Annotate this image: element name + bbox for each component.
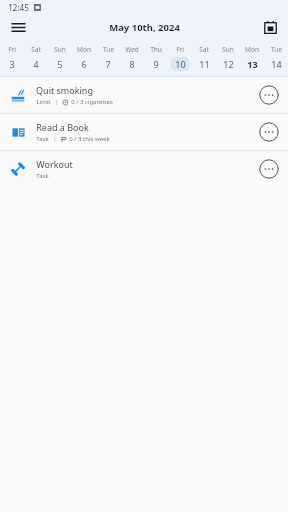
staticText: 4 [33, 58, 39, 70]
staticText: 10 [175, 58, 186, 70]
staticText: May 10th, 2024 [109, 21, 180, 34]
staticText: Sun [54, 45, 66, 54]
staticText: Tue [271, 45, 282, 54]
button[interactable]: Mon [240, 45, 264, 71]
staticText: Mon [245, 45, 259, 54]
staticText: Thu [150, 45, 162, 54]
staticText: 6 [81, 58, 87, 70]
staticText: 7 [105, 58, 111, 70]
staticText: 8 [129, 58, 135, 70]
button[interactable]: More options [258, 158, 280, 180]
button[interactable]: Mon [72, 45, 96, 71]
staticText: 9 [153, 58, 159, 70]
staticText: Workout [36, 158, 73, 170]
button[interactable]: Sun [48, 45, 72, 71]
button[interactable]: Workout [0, 151, 288, 187]
staticText: Task [36, 172, 49, 180]
button[interactable]: Sat [192, 45, 216, 71]
staticText: Quit smoking [36, 84, 93, 96]
button[interactable]: Read a Book [0, 114, 288, 150]
button[interactable]: Menu [6, 15, 30, 39]
button[interactable]: Thu [144, 45, 168, 71]
staticText: Sat [31, 45, 41, 54]
button[interactable]: Wed [120, 45, 144, 71]
staticText: 0 / 3 this week [69, 135, 110, 143]
staticText: 0 / 3 cigarettes [71, 98, 113, 106]
staticText: Read a Book [36, 121, 89, 133]
staticText: Task [36, 135, 49, 143]
button[interactable]: Fri [0, 45, 24, 71]
button[interactable]: More options [258, 84, 280, 106]
staticText: Mon [77, 45, 91, 54]
staticText: 14 [271, 58, 282, 70]
button[interactable]: Sat [24, 45, 48, 71]
staticText: Limit [36, 98, 51, 106]
staticText: 3 [9, 58, 15, 70]
button[interactable]: Fri [168, 45, 192, 71]
staticText: Fri [8, 45, 16, 54]
button[interactable]: Calendar [258, 15, 282, 39]
staticText: | [53, 135, 57, 143]
staticText: Fri [176, 45, 184, 54]
button[interactable]: More options [258, 121, 280, 143]
staticText: | [55, 98, 59, 106]
staticText: 11 [199, 58, 210, 70]
staticText: 12:45 [8, 2, 29, 13]
staticText: 5 [57, 58, 63, 70]
staticText: Sat [199, 45, 209, 54]
staticText: Wed [125, 45, 139, 54]
button[interactable]: Quit smoking [0, 77, 288, 113]
staticText: Sun [222, 45, 234, 54]
staticText: Tue [103, 45, 114, 54]
button[interactable]: Tue [264, 45, 288, 71]
staticText: 13 [247, 58, 258, 70]
button[interactable]: Tue [96, 45, 120, 71]
button[interactable]: Sun [216, 45, 240, 71]
staticText: 12 [223, 58, 234, 70]
